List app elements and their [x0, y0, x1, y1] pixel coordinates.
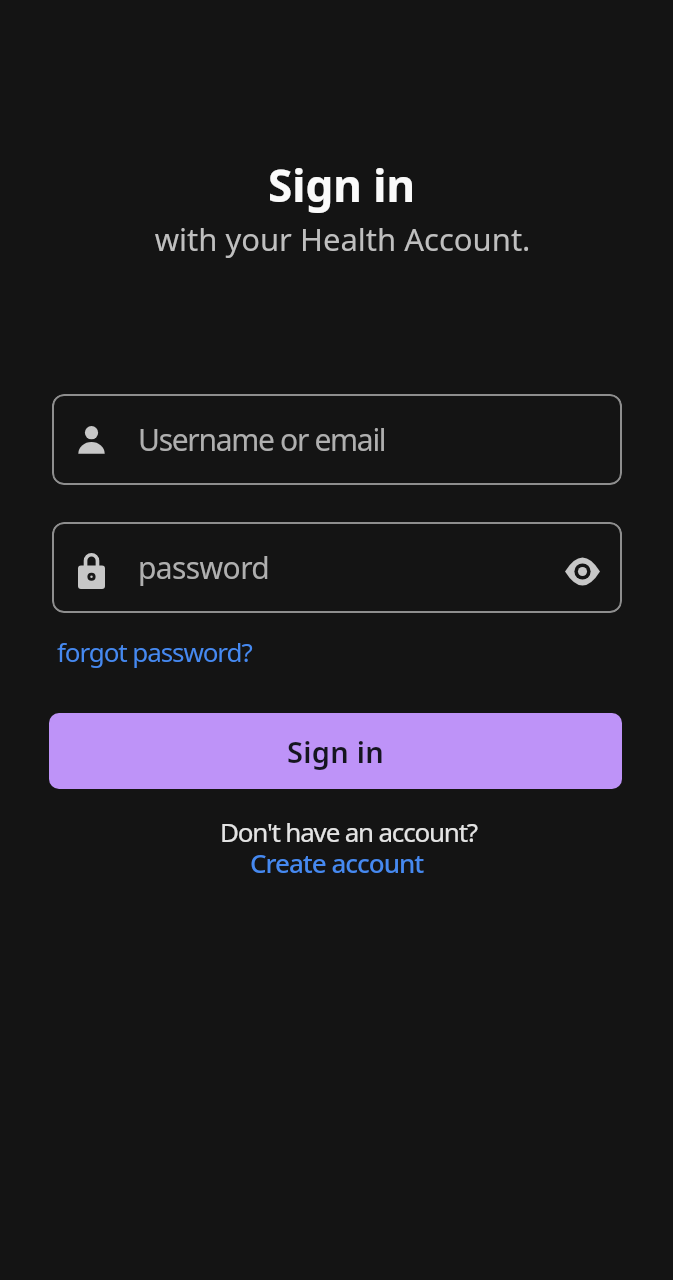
staticText: Sign in: [287, 732, 385, 771]
button[interactable]: Username or email: [52, 394, 622, 485]
button[interactable]: forgot password?: [57, 634, 252, 669]
staticText: Create account: [250, 845, 424, 880]
button[interactable]: [560, 549, 604, 593]
staticText: with your Health Account.: [6, 218, 673, 260]
staticText: Sign in: [5, 155, 673, 215]
button[interactable]: Sign in: [49, 713, 622, 789]
staticText: password: [138, 547, 270, 588]
button[interactable]: Create account: [250, 845, 424, 880]
staticText: Don't have an account?: [12, 814, 673, 849]
staticText: forgot password?: [57, 634, 252, 669]
button[interactable]: password: [52, 522, 622, 613]
staticText: Username or email: [138, 419, 386, 460]
